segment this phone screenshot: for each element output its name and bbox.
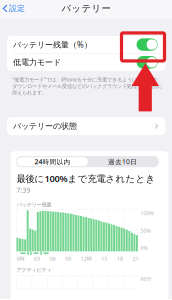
staticText: バッテリー残量 — [16, 201, 51, 208]
staticText: 設定 — [9, 3, 25, 13]
button[interactable]: バッテリー残量（%） — [7, 36, 166, 53]
staticText: 60分 — [140, 275, 151, 282]
button[interactable]: バッテリーの状態 — [7, 117, 166, 135]
staticText: 18 — [117, 255, 123, 262]
staticText: 100% — [140, 210, 153, 217]
staticText: 24時間以内 — [35, 157, 71, 166]
staticText: アクティビティ — [16, 267, 51, 273]
staticText: 0% — [140, 244, 147, 252]
button[interactable]: 設定 — [0, 0, 28, 18]
staticText: 最後に100%まで充電されたとき — [16, 172, 155, 185]
staticText: 低電力モード — [13, 57, 61, 67]
button[interactable]: 24時間以内 — [18, 157, 88, 166]
button[interactable]: 低電力モード — [7, 54, 166, 71]
staticText: バッテリーの状態 — [13, 121, 77, 131]
staticText: バッテリー — [61, 3, 110, 14]
staticText: 03 — [34, 255, 40, 262]
staticText: 21 — [132, 255, 138, 262]
staticText: 過去10日 — [108, 157, 137, 166]
staticText: 12時 — [81, 255, 92, 262]
staticText: 09 — [65, 255, 71, 262]
staticText: 06 — [50, 255, 56, 262]
staticText: “低電力モード”では、iPhoneを十分に充電できるようになるまで、ダウンロード… — [12, 76, 162, 96]
staticText: 0時 — [16, 255, 24, 262]
staticText: バッテリー残量（%） — [13, 39, 92, 50]
staticText: 7:39 — [16, 186, 30, 195]
staticText: 15 — [101, 255, 107, 262]
button[interactable]: 過去10日 — [88, 157, 158, 166]
staticText: 50% — [140, 227, 150, 234]
